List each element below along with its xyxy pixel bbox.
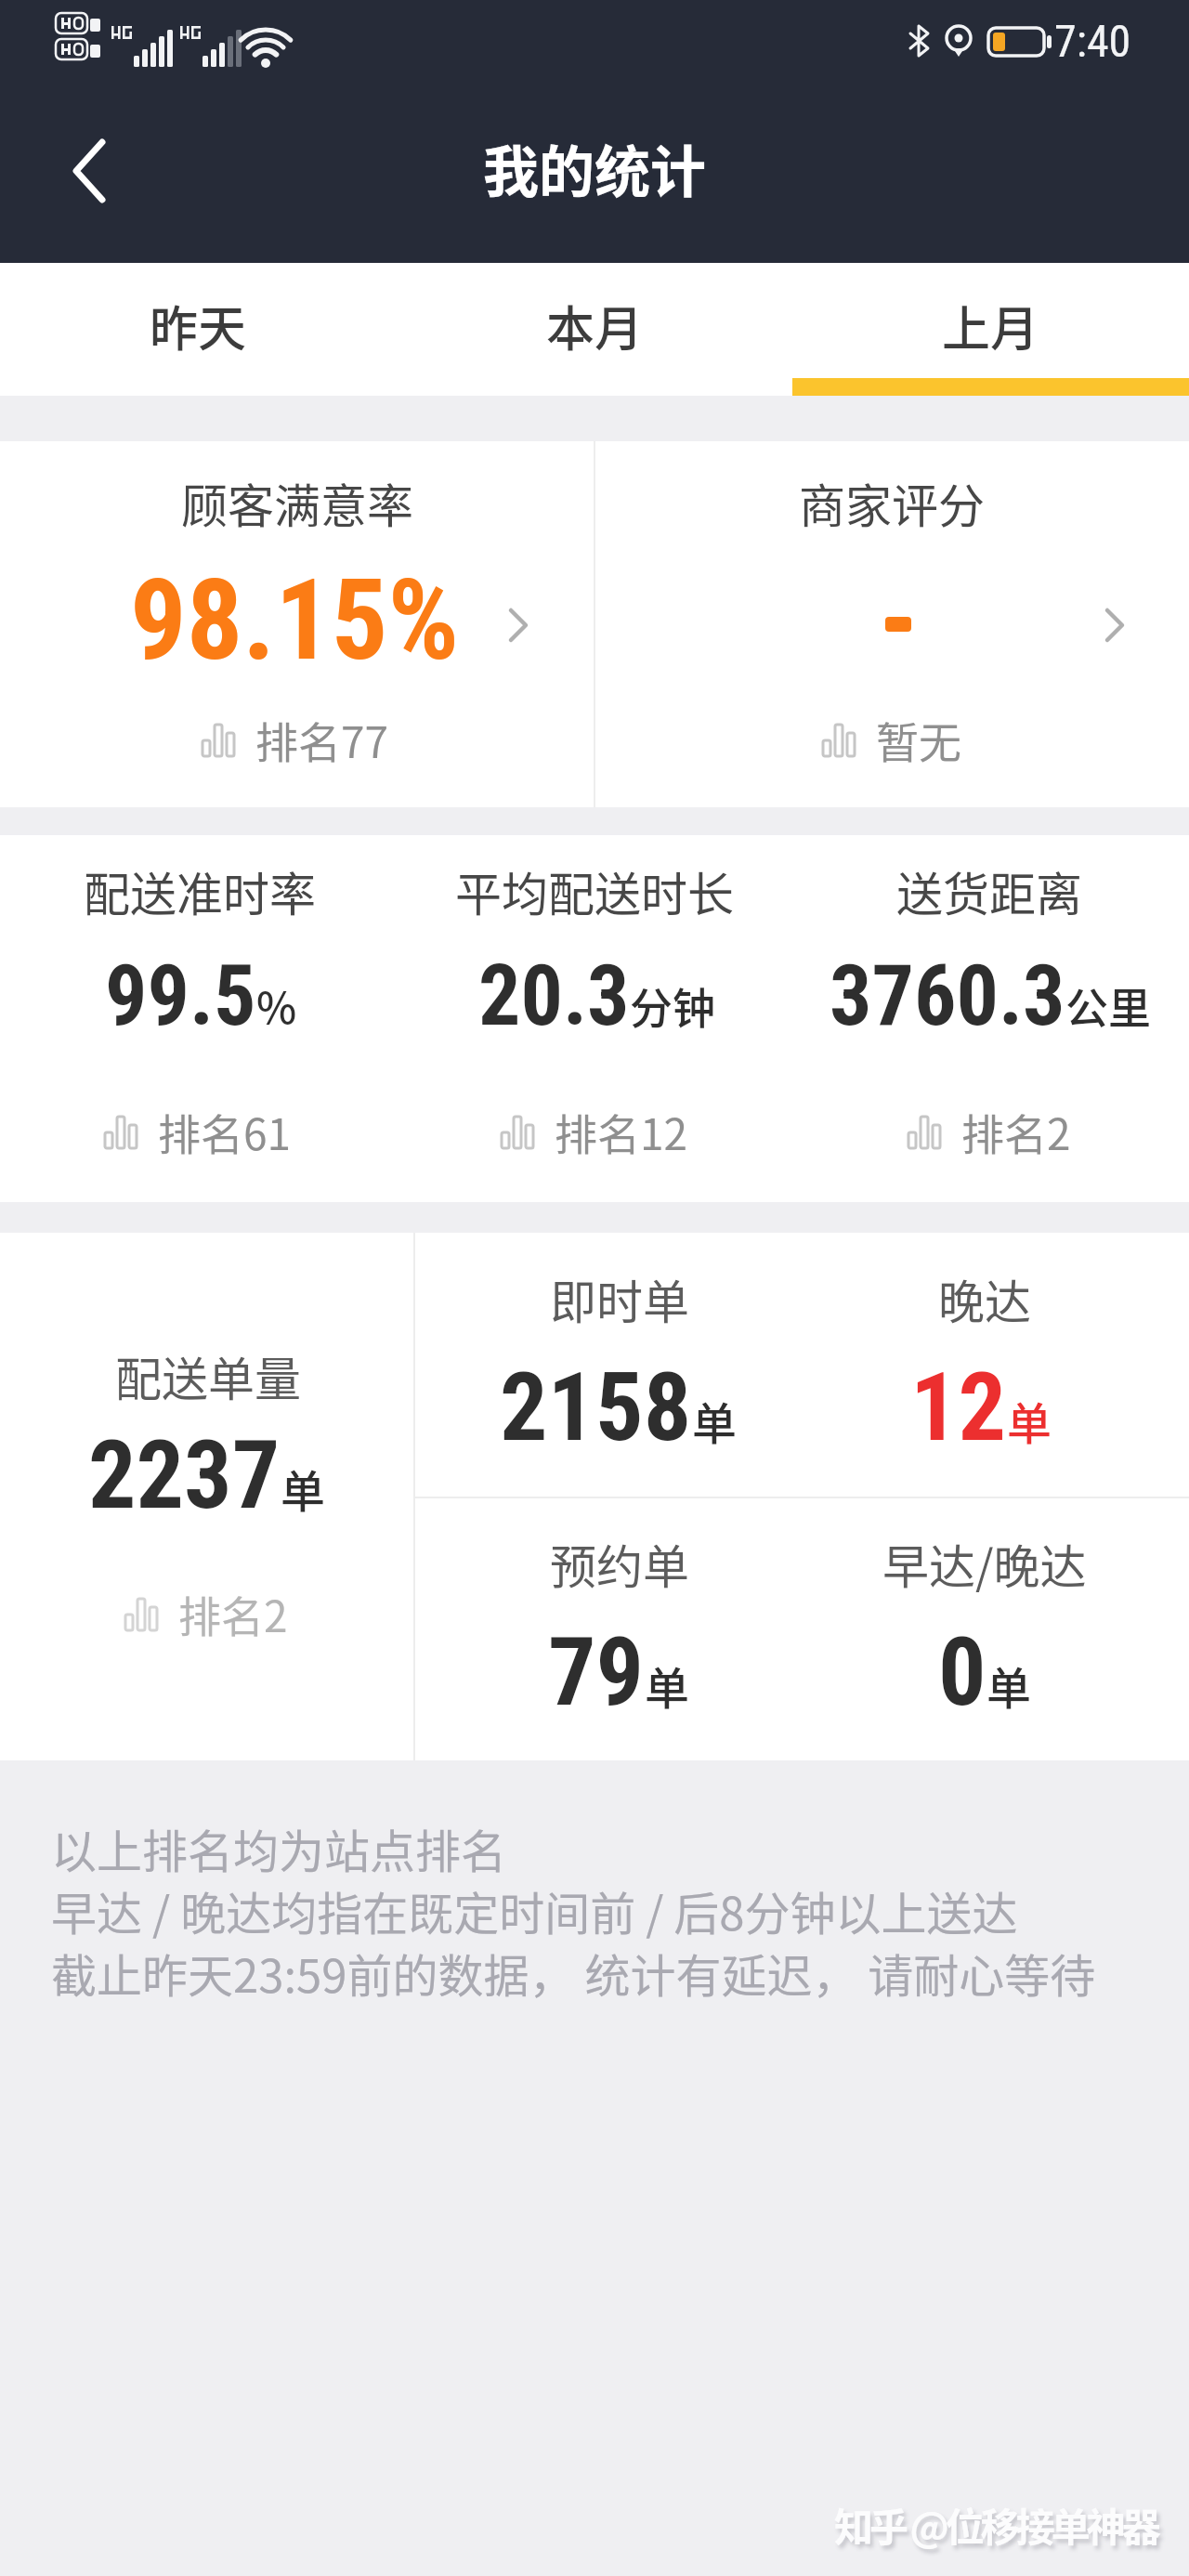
staticText: 商家评分: [799, 469, 985, 536]
staticText: 即时单: [550, 1265, 689, 1332]
staticText: 0: [938, 1616, 986, 1728]
staticText: %: [256, 974, 297, 1037]
staticText: 单: [1007, 1388, 1052, 1453]
staticText: 预约单: [550, 1530, 689, 1597]
staticText: 排名61: [158, 1101, 292, 1163]
staticText: 20.3: [478, 948, 630, 1045]
staticText: 单: [281, 1456, 326, 1521]
staticText: 以上排名均为站点排名 早达 / 晚达均指在既定时间前 / 后8分钟以上送达 截止…: [51, 1815, 1096, 2006]
staticText: 送货距离: [896, 857, 1082, 924]
staticText: 排名12: [555, 1101, 688, 1163]
staticText: 公里: [1065, 974, 1151, 1037]
staticText: 排名77: [255, 709, 389, 771]
staticText: 99.5: [105, 948, 256, 1045]
staticText: 晚达: [938, 1265, 1031, 1332]
staticText: 知乎 @位移接单神器: [834, 2496, 1157, 2553]
staticText: 昨天: [150, 291, 247, 360]
staticText: 顾客满意率: [181, 469, 413, 536]
staticText: 暂无: [876, 709, 961, 771]
staticText: 早达/晚达: [882, 1530, 1087, 1597]
staticText: 配送单量: [115, 1342, 301, 1409]
staticText: 分钟: [630, 974, 715, 1037]
staticText: 12: [910, 1352, 1007, 1463]
staticText: 79: [548, 1616, 645, 1728]
staticText: 单: [645, 1653, 690, 1718]
staticText: 配送准时率: [84, 857, 316, 924]
staticText: 平均配送时长: [455, 857, 734, 924]
staticText: 98.15%: [130, 556, 460, 686]
staticText: 单: [692, 1388, 738, 1453]
staticText: 上月: [942, 291, 1039, 360]
staticText: 排名2: [961, 1101, 1071, 1163]
staticText: 本月: [546, 291, 644, 360]
staticText: 我的统计: [483, 127, 706, 208]
staticText: 2158: [500, 1352, 692, 1463]
staticText: 7:40: [1054, 15, 1131, 67]
staticText: 3760.3: [830, 948, 1065, 1045]
staticText: 2237: [88, 1419, 281, 1531]
staticText: 排名2: [178, 1583, 288, 1645]
staticText: 单: [986, 1653, 1032, 1718]
